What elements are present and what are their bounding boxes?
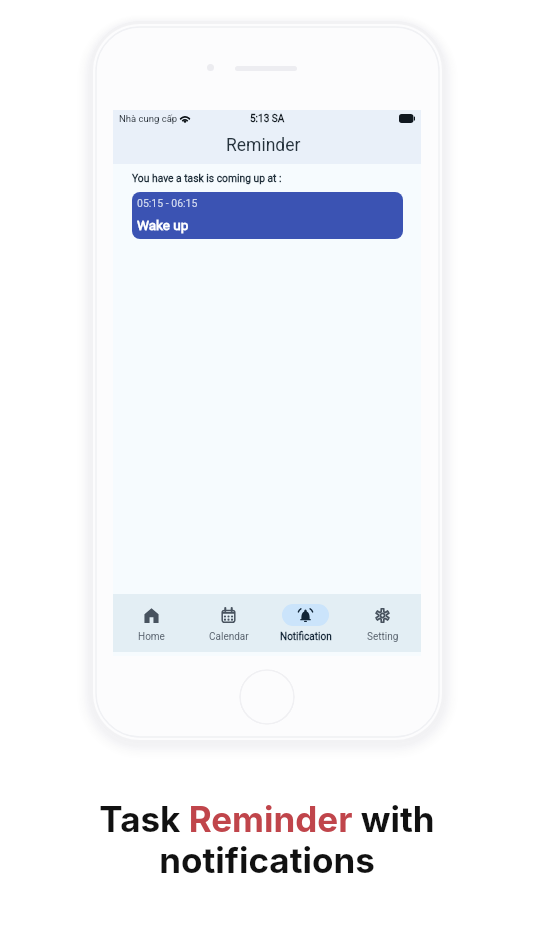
staticText: Wake up [137, 217, 189, 233]
staticText: Home [138, 631, 165, 643]
button[interactable]: Notification [267, 594, 344, 633]
staticText: Setting [367, 631, 399, 643]
staticText: 5:13 SA [250, 113, 285, 125]
button[interactable]: Calendar [190, 594, 267, 633]
staticText: Calendar [209, 631, 249, 643]
button[interactable]: Home [113, 594, 190, 633]
staticText: 05:15 - 06:15 [137, 197, 198, 209]
staticText: Task Reminder with notifications [99, 798, 435, 881]
button[interactable]: 05:15 - 06:15 [132, 192, 403, 239]
button[interactable]: Setting [344, 594, 421, 633]
staticText: You have a task is coming up at : [132, 172, 282, 184]
staticText: Reminder [226, 135, 301, 156]
staticText: Nhà cung cấp [119, 113, 178, 124]
staticText: Notification [280, 631, 332, 643]
